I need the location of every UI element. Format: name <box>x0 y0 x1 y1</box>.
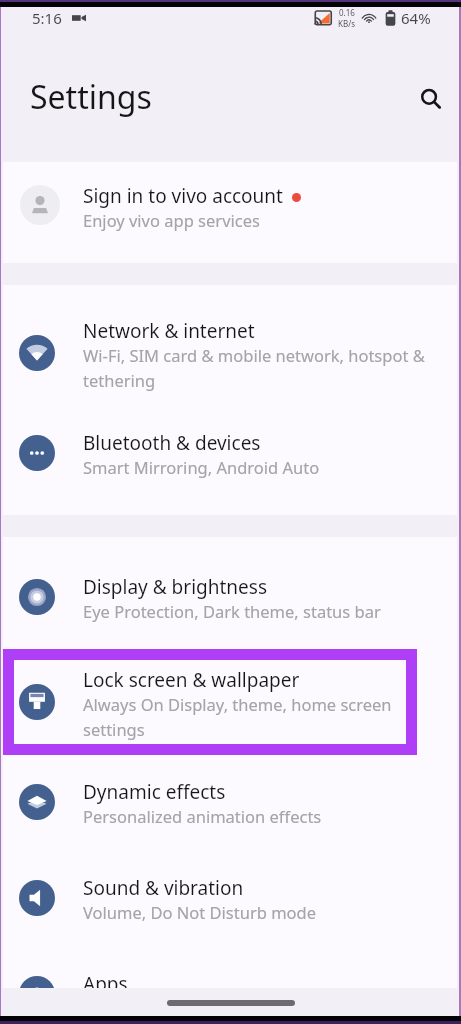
staticText: 5:16 <box>32 8 62 28</box>
button[interactable]: Bluetooth & devices <box>0 397 461 515</box>
staticText: Bluetooth & devices <box>83 430 261 456</box>
staticText: Smart Mirroring, Android Auto <box>83 456 320 478</box>
staticText: Display & brightness <box>83 574 267 600</box>
button[interactable]: Apps <box>0 934 461 1024</box>
staticText: Network & internet <box>83 318 255 344</box>
button[interactable]: Network & internet <box>0 285 461 397</box>
button[interactable]: Search <box>411 79 451 119</box>
button[interactable]: Dynamic effects <box>0 742 461 838</box>
staticText: Wi-Fi, SIM card & mobile network, hotspo… <box>83 344 428 391</box>
button[interactable]: Lock screen & wallpaper <box>0 629 461 742</box>
staticText: 64% <box>401 8 431 28</box>
staticText: Personalized animation effects <box>83 805 322 827</box>
staticText: Sound & vibration <box>83 875 244 901</box>
staticText: Volume, Do Not Disturb mode <box>83 901 317 923</box>
button[interactable]: Display & brightness <box>0 537 461 629</box>
staticText: Always On Display, theme, home screen se… <box>83 693 428 740</box>
staticText: 0.16 <box>339 7 355 18</box>
staticText: Settings <box>30 75 152 119</box>
staticText: Dynamic effects <box>83 779 226 805</box>
staticText: Sign in to vivo account <box>83 183 283 209</box>
staticText: Enjoy vivo app services <box>83 209 260 231</box>
button[interactable]: Sound & vibration <box>0 838 461 934</box>
staticText: Apps <box>83 971 128 997</box>
staticText: Lock screen & wallpaper <box>83 667 300 693</box>
button[interactable]: Sign in to vivo account <box>0 162 461 263</box>
staticText: Eye Protection, Dark theme, status bar <box>83 600 381 622</box>
staticText: KB/s <box>338 18 355 29</box>
